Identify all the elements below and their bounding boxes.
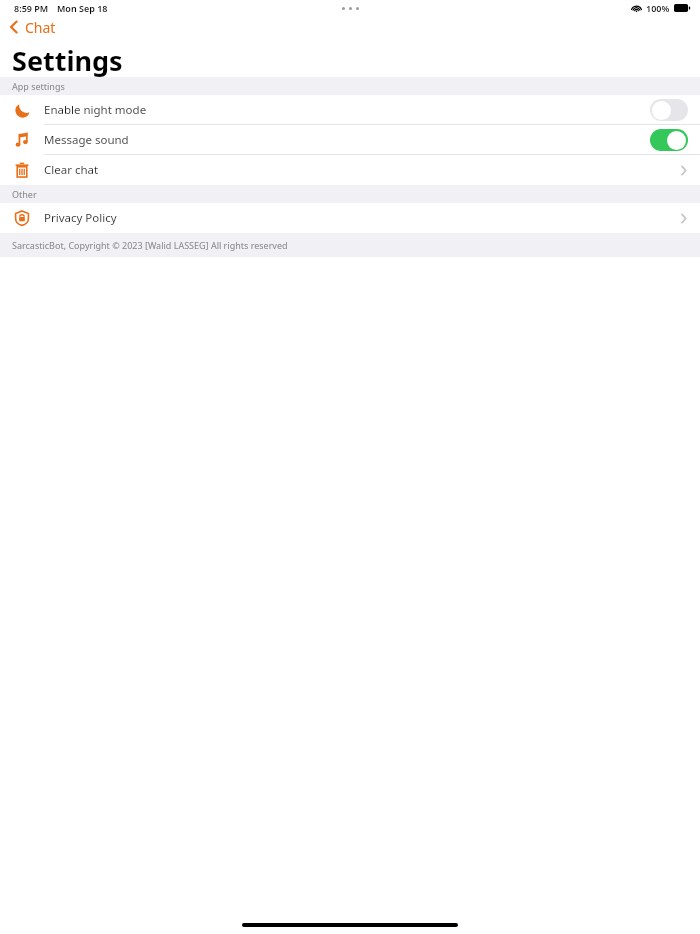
staticText: Other [12,188,37,200]
button[interactable]: Clear chat [0,155,700,185]
staticText: SarcasticBot, Copyright © 2023 [Walid LA… [12,239,288,251]
button[interactable]: On [650,129,688,151]
staticText: App settings [12,80,65,92]
staticText: 8:59 PM [14,2,49,14]
button[interactable]: Chat [0,16,700,38]
staticText: Message sound [44,132,129,148]
staticText: Chat [25,18,56,37]
button[interactable]: Off [650,99,688,121]
staticText: Settings [12,42,123,77]
other: Open [680,164,688,177]
other: Open [680,212,688,225]
staticText: Clear chat [44,162,99,178]
staticText: Privacy Policy [44,210,117,226]
staticText: 100% [646,2,670,14]
button[interactable]: Enable night mode [0,95,700,125]
button[interactable]: Privacy Policy [0,203,700,233]
staticText: Enable night mode [44,102,147,118]
staticText: Mon Sep 18 [57,2,108,14]
button[interactable]: Message sound [0,125,700,155]
